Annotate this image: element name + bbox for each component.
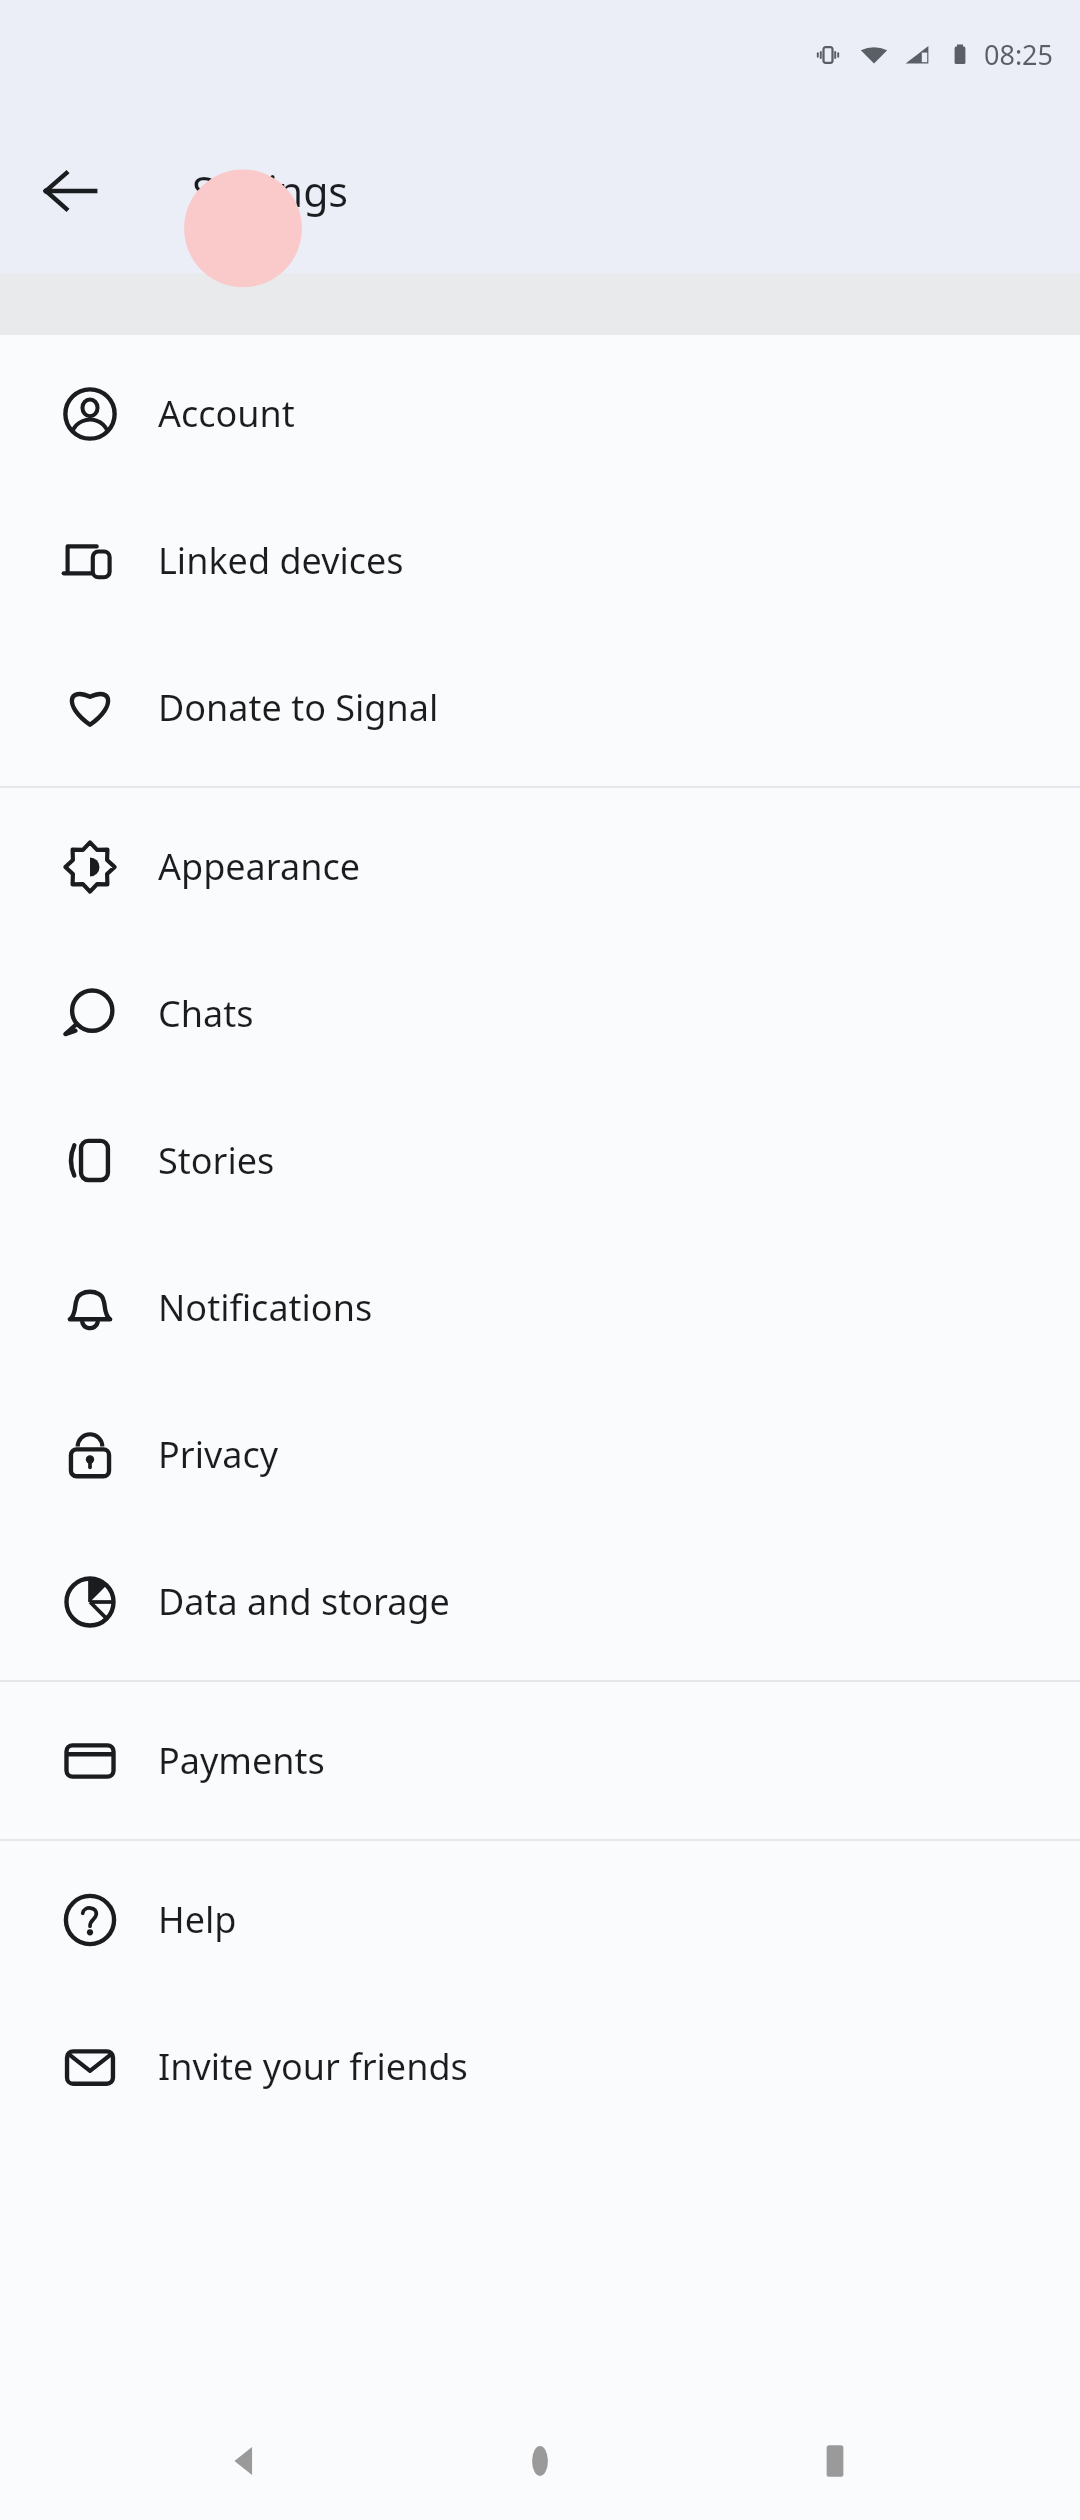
staticText: Linked devices [158,536,404,585]
staticText: Stories [158,1136,275,1185]
staticText: Appearance [158,842,360,891]
staticText: Notifications [158,1283,373,1332]
staticText: Settings [192,163,349,219]
button[interactable]: Stories [0,1087,1080,1234]
button[interactable]: Chats [0,940,1080,1087]
staticText: Help [158,1895,237,1944]
staticText: 08:25 [984,36,1054,73]
staticText: Invite your friends [158,2042,468,2091]
staticText: Privacy [158,1430,279,1479]
button[interactable]: Privacy [0,1381,1080,1528]
button[interactable]: Home [490,2411,590,2511]
staticText: Account [158,389,295,438]
button[interactable]: Payments [0,1687,1080,1834]
button[interactable]: Donate to Signal [0,634,1080,781]
button[interactable]: Help [0,1846,1080,1993]
staticText: Payments [158,1736,325,1785]
button[interactable]: Appearance [0,793,1080,940]
staticText: Data and storage [158,1577,450,1626]
button[interactable]: Invite your friends [0,1993,1080,2140]
button[interactable]: Account [0,340,1080,487]
button[interactable]: Back [195,2411,295,2511]
button[interactable]: Recent apps [785,2411,885,2511]
staticText: Donate to Signal [158,683,439,732]
button[interactable]: Notifications [0,1234,1080,1381]
staticText: Chats [158,989,254,1038]
button[interactable]: Data and storage [0,1528,1080,1675]
button[interactable]: Back [40,161,100,221]
button[interactable]: Linked devices [0,487,1080,634]
